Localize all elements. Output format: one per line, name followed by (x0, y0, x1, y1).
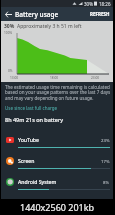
button[interactable]: Back (1, 7, 15, 21)
button[interactable]: Use since last full charge (5, 105, 58, 111)
staticText: YouTube (18, 136, 39, 143)
staticText: 18:26 (99, 1, 111, 7)
staticText: Use since last full charge (5, 105, 58, 111)
staticText: 23:00 (91, 76, 100, 80)
staticText: 13:00 (10, 76, 19, 80)
staticText: 1440x2560 201kb (20, 201, 95, 213)
staticText: 23% (101, 137, 110, 143)
staticText: 0% (8, 69, 13, 73)
button[interactable]: YouTube (1, 132, 113, 153)
staticText: Battery usage (15, 10, 59, 19)
staticText: Screen (18, 157, 35, 164)
staticText: Approximately 3 h 51 m left (17, 23, 82, 30)
button[interactable]: Android System (1, 174, 113, 195)
staticText: 8h 49m 21s on battery (5, 116, 63, 123)
staticText: The estimated usage time remaining is ca… (5, 84, 111, 102)
staticText: Android System (18, 178, 57, 185)
button[interactable]: REFRESH (87, 7, 113, 21)
staticText: 30% (84, 1, 93, 7)
staticText: 100% (4, 31, 13, 35)
button[interactable]: Screen (1, 153, 113, 174)
staticText: 17% (101, 158, 110, 164)
staticText: 18:00 (50, 76, 59, 80)
staticText: 30% (4, 23, 15, 30)
staticText: REFRESH (90, 11, 110, 17)
staticText: 8% (103, 179, 110, 185)
